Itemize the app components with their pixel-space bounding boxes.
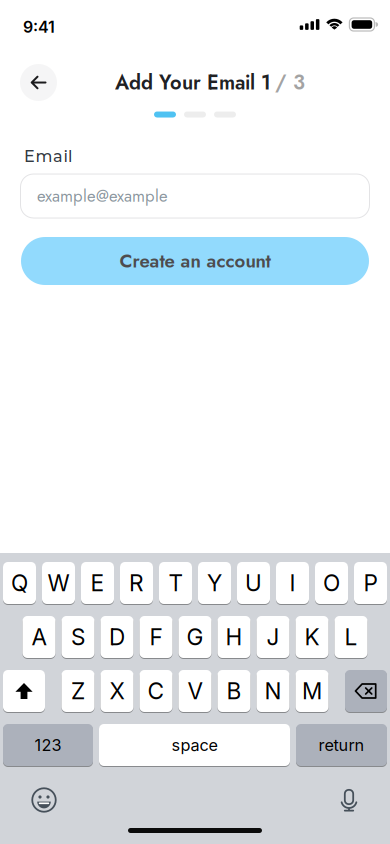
staticText: G — [186, 623, 203, 651]
button[interactable]: G — [178, 616, 211, 658]
button[interactable]: Y — [198, 562, 231, 604]
staticText: H — [225, 623, 242, 651]
staticText: C — [147, 677, 164, 705]
button[interactable]: example@example — [0, 174, 390, 218]
staticText: Add Your Email 1 — [115, 68, 271, 97]
button[interactable]: R — [120, 562, 153, 604]
button[interactable]: Dictation — [339, 787, 359, 813]
staticText: R — [129, 569, 144, 597]
button[interactable]: L — [334, 616, 367, 658]
button[interactable]: return — [296, 724, 387, 766]
button[interactable]: space — [99, 724, 290, 766]
button[interactable]: D — [100, 616, 133, 658]
button[interactable]: Create an account — [0, 237, 390, 285]
staticText: W — [47, 569, 69, 597]
staticText: P — [363, 569, 377, 597]
button[interactable]: B — [217, 670, 250, 712]
staticText: Create an account — [119, 247, 270, 274]
button[interactable]: Delete — [345, 670, 387, 712]
staticText: E — [90, 569, 104, 597]
button[interactable]: J — [256, 616, 289, 658]
button[interactable]: I — [276, 562, 309, 604]
staticText: M — [302, 677, 322, 705]
staticText: N — [264, 677, 281, 705]
button[interactable]: W — [42, 562, 75, 604]
button[interactable]: Back — [20, 64, 57, 101]
button[interactable]: S — [61, 616, 94, 658]
staticText: example@example — [37, 184, 168, 208]
staticText: X — [109, 677, 124, 705]
staticText: S — [71, 623, 85, 651]
staticText: Email — [24, 146, 72, 166]
staticText: A — [31, 623, 46, 651]
button[interactable]: N — [256, 670, 289, 712]
button[interactable]: M — [295, 670, 328, 712]
staticText: I — [289, 569, 295, 597]
button[interactable]: T — [159, 562, 192, 604]
staticText: U — [245, 569, 262, 597]
staticText: 9:41 — [23, 17, 55, 37]
button[interactable]: Q — [3, 562, 36, 604]
button[interactable]: Emoji — [31, 787, 57, 813]
button[interactable]: C — [139, 670, 172, 712]
button[interactable]: V — [178, 670, 211, 712]
staticText: space — [171, 735, 217, 755]
button[interactable]: F — [139, 616, 172, 658]
staticText: T — [168, 569, 182, 597]
button[interactable]: E — [81, 562, 114, 604]
button[interactable]: P — [354, 562, 387, 604]
staticText: 123 — [34, 735, 61, 755]
button[interactable]: O — [315, 562, 348, 604]
button[interactable]: Shift — [3, 670, 45, 712]
button[interactable]: K — [295, 616, 328, 658]
button[interactable]: Z — [61, 670, 94, 712]
staticText: F — [149, 623, 162, 651]
staticText: B — [226, 677, 241, 705]
staticText: L — [344, 623, 357, 651]
button[interactable]: H — [217, 616, 250, 658]
button[interactable]: A — [22, 616, 55, 658]
staticText: Y — [207, 569, 222, 597]
staticText: D — [109, 623, 125, 651]
staticText: Q — [11, 569, 28, 597]
button[interactable]: 123 — [3, 724, 93, 766]
staticText: / 3 — [275, 68, 305, 97]
button[interactable]: U — [237, 562, 270, 604]
staticText: return — [318, 735, 364, 755]
staticText: O — [323, 569, 340, 597]
staticText: Z — [71, 677, 85, 705]
button[interactable]: X — [100, 670, 133, 712]
staticText: V — [187, 677, 202, 705]
staticText: K — [304, 623, 319, 651]
staticText: J — [266, 623, 279, 651]
